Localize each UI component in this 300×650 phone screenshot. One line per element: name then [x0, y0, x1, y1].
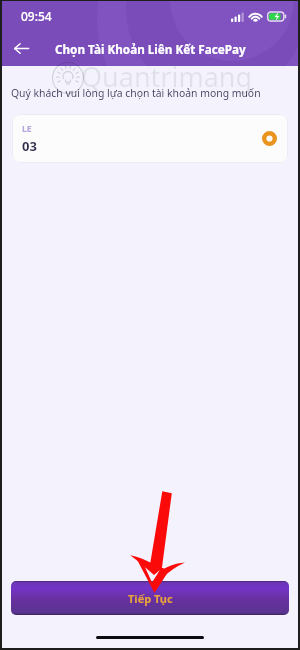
- staticText: 03: [22, 137, 37, 155]
- staticText: Quantrimang: [81, 58, 253, 95]
- button[interactable]: Tiếp Tục: [11, 581, 289, 615]
- staticText: Quý khách vui lòng lựa chọn tài khoản mo…: [11, 86, 261, 100]
- staticText: Tiếp Tục: [128, 591, 173, 606]
- staticText: 09:54: [21, 8, 52, 24]
- button[interactable]: LE: [12, 114, 288, 163]
- staticText: LE: [22, 123, 32, 135]
- button[interactable]: Back: [2, 31, 40, 66]
- staticText: Chọn Tài Khoản Liên Kết FacePay: [55, 41, 246, 57]
